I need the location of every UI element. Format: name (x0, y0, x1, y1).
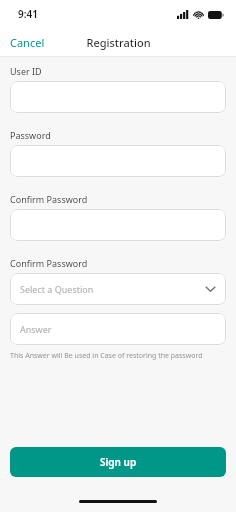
other: Open question list (204, 283, 216, 295)
staticText: Cancel (10, 35, 45, 50)
button[interactable]: Sign up (10, 447, 226, 477)
staticText: Answer (20, 323, 52, 335)
staticText: This Answer will Be used in Case of rest… (10, 351, 203, 361)
button[interactable]: Answer (10, 313, 226, 345)
staticText: User ID (10, 65, 42, 77)
button[interactable] (10, 145, 226, 177)
button[interactable] (10, 81, 226, 113)
staticText: Confirm Password (10, 257, 88, 269)
staticText: Registration (86, 35, 151, 50)
staticText: Select a Question (20, 283, 204, 295)
staticText: 9:41 (18, 7, 38, 21)
staticText: Confirm Password (10, 193, 88, 205)
button[interactable]: Cancel (0, 31, 53, 54)
button[interactable]: Select a Question (10, 273, 226, 305)
staticText: Sign up (100, 455, 137, 469)
staticText: Password (10, 129, 51, 141)
button[interactable] (10, 209, 226, 241)
